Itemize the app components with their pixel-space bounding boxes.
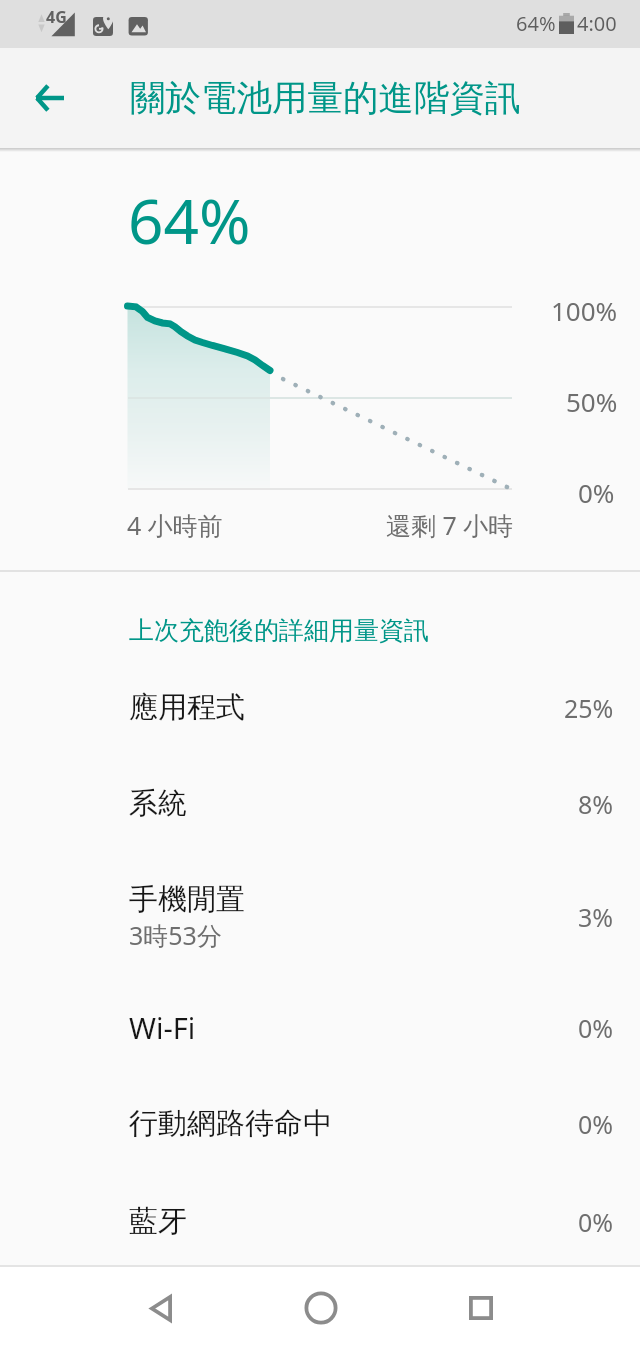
button[interactable]: Home bbox=[281, 1269, 361, 1347]
staticText: 4:00 bbox=[577, 10, 617, 37]
staticText: 8% bbox=[578, 787, 614, 821]
button[interactable]: 系統 bbox=[0, 756, 640, 851]
staticText: 行動網路待命中 bbox=[129, 1105, 332, 1142]
staticText: 0% bbox=[578, 1205, 614, 1239]
button[interactable]: 藍牙 bbox=[0, 1174, 640, 1269]
button[interactable]: Wi-Fi bbox=[0, 980, 640, 1075]
staticText: 64% bbox=[516, 10, 556, 37]
staticText: 應用程式 bbox=[129, 689, 245, 726]
staticText: 100% bbox=[551, 293, 618, 328]
staticText: 4 小時前 bbox=[127, 508, 223, 542]
staticText: 25% bbox=[564, 691, 614, 725]
button[interactable]: Battery level graph bbox=[0, 152, 640, 570]
staticText: Wi-Fi bbox=[129, 1008, 196, 1047]
staticText: 還剩 7 小時 bbox=[386, 508, 514, 542]
button[interactable]: 行動網路待命中 bbox=[0, 1076, 640, 1171]
staticText: 4G bbox=[46, 6, 67, 28]
staticText: 0% bbox=[578, 1107, 614, 1141]
staticText: 藍牙 bbox=[129, 1203, 187, 1240]
staticText: 64% bbox=[128, 178, 251, 262]
button[interactable]: Back bbox=[121, 1269, 201, 1347]
staticText: 手機閒置 bbox=[129, 881, 245, 918]
staticText: 3% bbox=[578, 900, 614, 934]
staticText: 50% bbox=[566, 384, 618, 419]
button[interactable]: 手機閒置 bbox=[0, 854, 640, 979]
button[interactable]: 應用程式 bbox=[0, 660, 640, 755]
button[interactable]: Recents bbox=[441, 1269, 521, 1347]
staticText: 關於電池用量的進階資訊 bbox=[130, 76, 521, 121]
staticText: 0% bbox=[578, 1011, 614, 1045]
staticText: 3時53分 bbox=[129, 918, 222, 952]
staticText: 系統 bbox=[129, 785, 187, 822]
staticText: 上次充飽後的詳細用量資訊 bbox=[129, 615, 429, 646]
button[interactable]: Back bbox=[22, 70, 78, 126]
staticText: 0% bbox=[578, 475, 615, 510]
